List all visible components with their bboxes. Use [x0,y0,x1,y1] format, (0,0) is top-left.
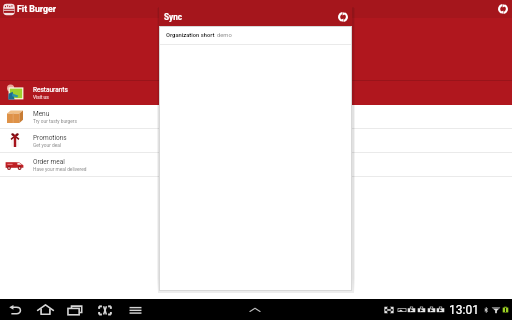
button[interactable]: Screenshot [94,299,116,320]
staticText: Organization short [166,32,215,39]
staticText: demo [217,32,232,39]
button[interactable]: Expand system bar [245,299,265,320]
staticText: Menu [33,110,50,118]
staticText: Sync [164,12,183,22]
staticText: Restaurants [33,86,68,94]
button[interactable]: Refresh [494,0,512,18]
button[interactable]: Back [4,299,26,320]
button[interactable]: Menu [124,299,146,320]
button[interactable]: Order meal [0,153,512,177]
button[interactable]: Restaurants [0,81,512,105]
staticText: Visit us [33,95,49,101]
button[interactable]: Sync now [333,7,352,26]
staticText: Have your meal delivered [33,167,87,173]
staticText: 13:01 [449,303,479,317]
button[interactable]: Promotions [0,129,512,153]
button[interactable]: Fit Burger home [3,3,15,16]
staticText: Fit Burger [17,4,56,14]
button[interactable]: Organization short [160,27,351,44]
staticText: Get your deal [33,143,62,149]
button[interactable]: Menu [0,105,512,129]
staticText: Order meal [33,158,65,166]
staticText: Promotions [33,134,67,142]
button[interactable]: Home [34,299,56,320]
staticText: Try our tasty burgers [33,119,77,125]
button[interactable]: Recent apps [64,299,86,320]
